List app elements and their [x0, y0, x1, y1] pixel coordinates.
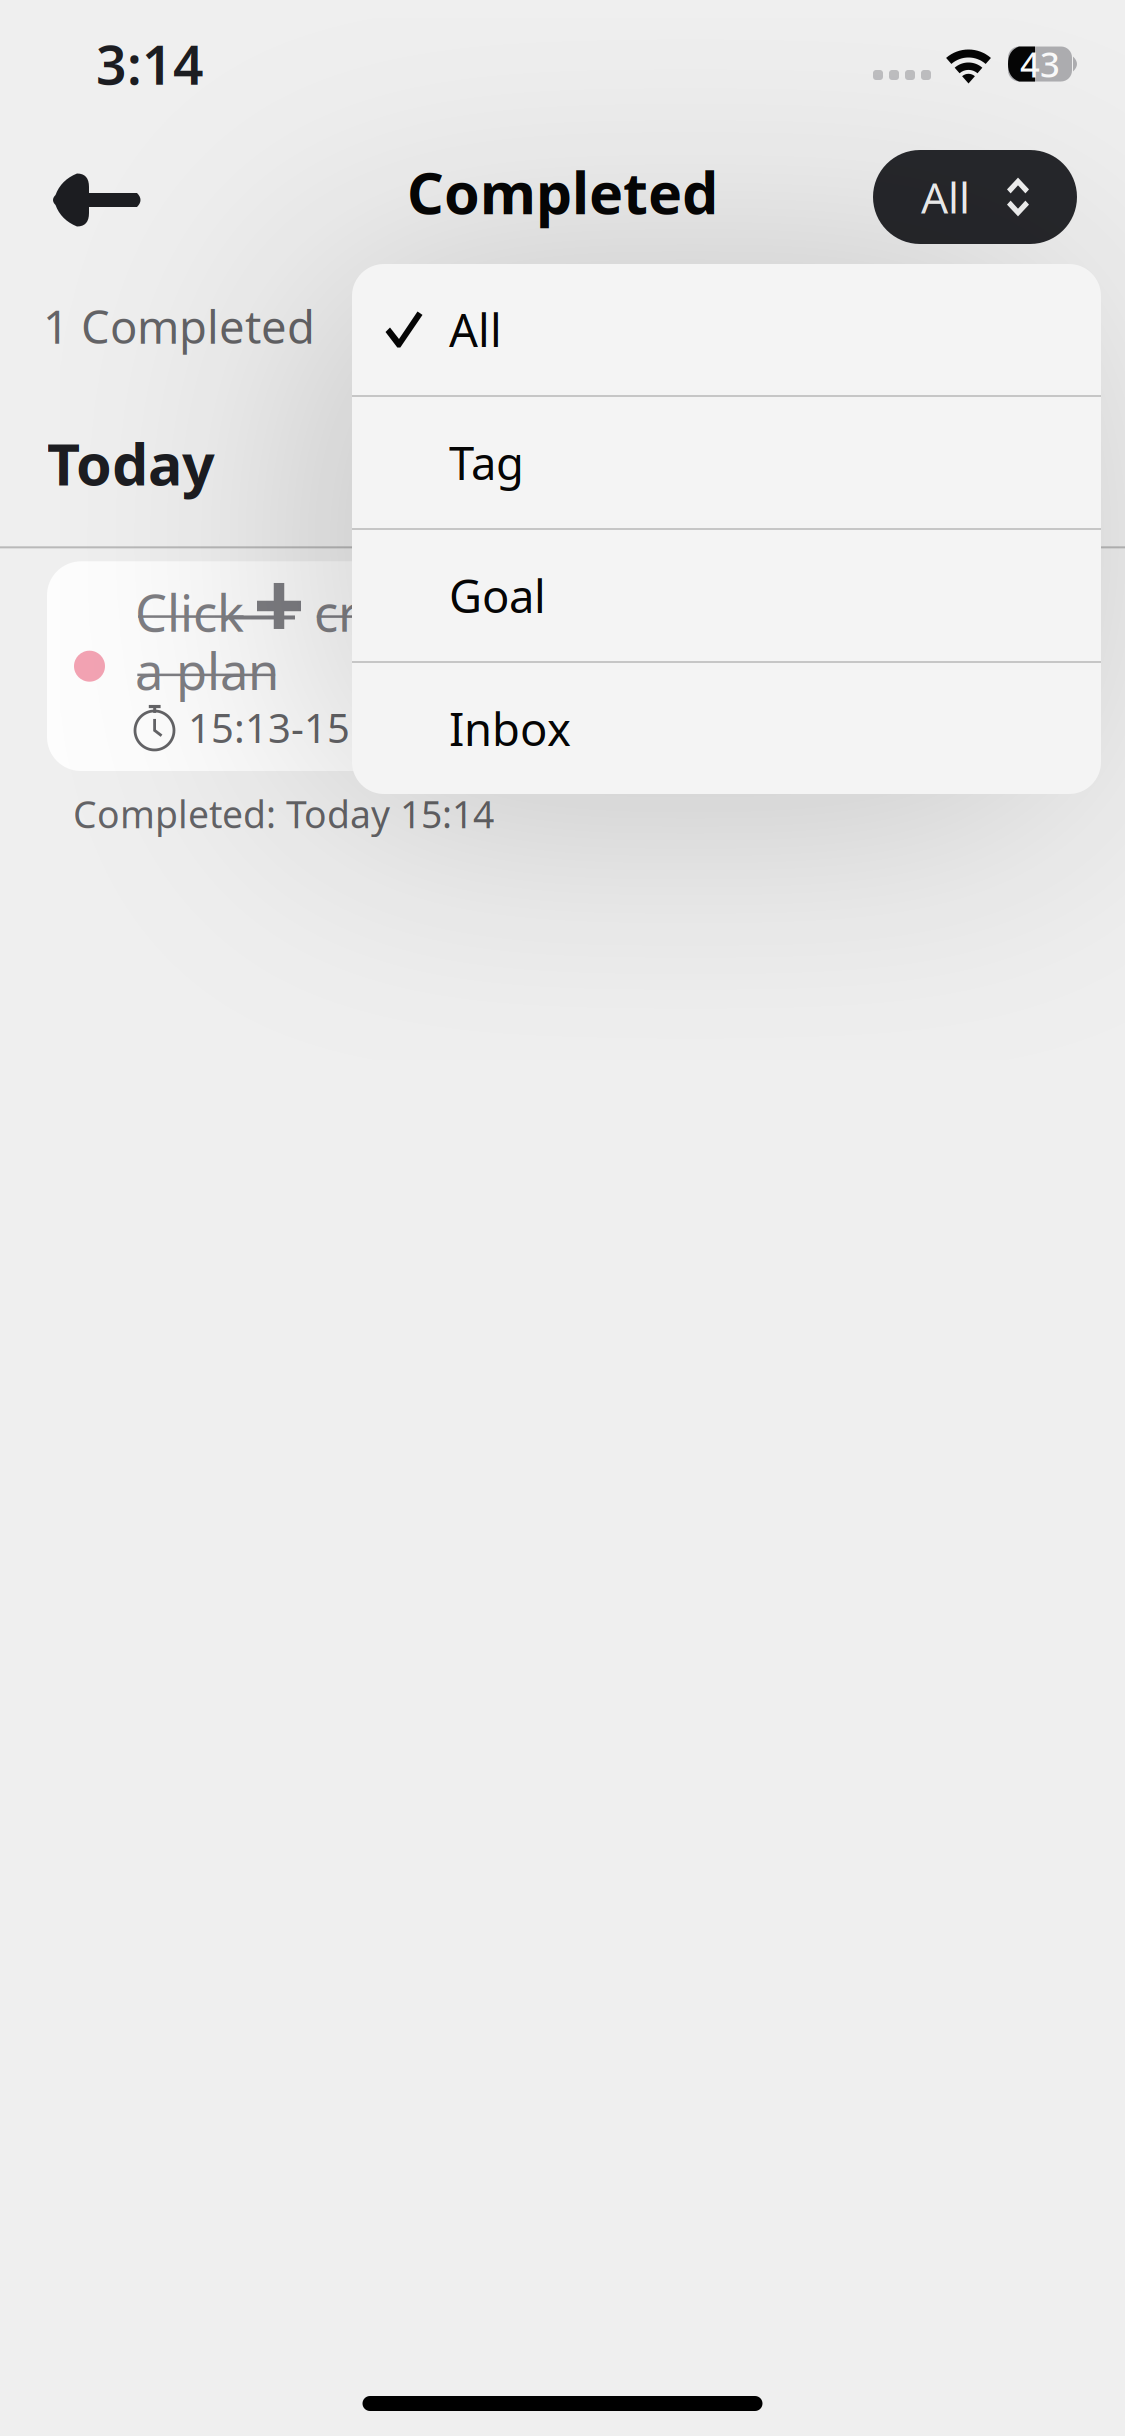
staticText: 43: [1020, 41, 1060, 87]
staticText: Click: [135, 578, 257, 646]
staticText: 1 Completed: [43, 296, 315, 356]
staticText: 15:13-15:43: [188, 701, 407, 754]
staticText: Completed: Today 15:14: [73, 789, 494, 839]
staticText: 3:14: [96, 29, 204, 99]
button[interactable]: Back: [46, 146, 152, 238]
staticText: All: [449, 299, 502, 360]
staticText: Inbox: [449, 698, 571, 759]
staticText: Tag: [449, 432, 524, 493]
button[interactable]: Goal: [352, 530, 1101, 661]
button[interactable]: Inbox: [352, 663, 1101, 794]
staticText: create: [301, 578, 462, 646]
button[interactable]: All: [873, 140, 1077, 244]
button[interactable]: All: [352, 264, 1101, 395]
staticText: a plan: [135, 637, 279, 704]
staticText: Completed: [407, 154, 718, 230]
staticText: Goal: [449, 565, 546, 626]
staticText: Today: [47, 425, 215, 501]
button[interactable]: Click: [47, 561, 1078, 771]
button[interactable]: Tag: [352, 397, 1101, 528]
staticText: All: [921, 169, 970, 225]
